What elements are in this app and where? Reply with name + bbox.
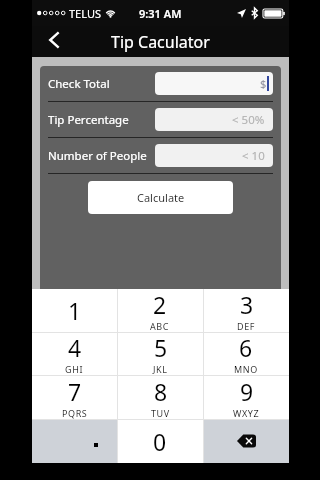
button[interactable]: 2 [117, 289, 203, 332]
button[interactable] [32, 419, 117, 463]
staticText: 2 [153, 289, 167, 320]
staticText: MNO [234, 363, 258, 375]
staticText: WXYZ [233, 407, 260, 419]
button[interactable]: 5 [117, 332, 203, 375]
button[interactable]: Back [32, 26, 76, 57]
button[interactable]: 1 [32, 289, 117, 332]
staticText: $ [260, 76, 267, 91]
staticText: 1 [68, 295, 82, 326]
button[interactable]: Backspace [203, 419, 289, 463]
staticText: < 50% [232, 112, 265, 128]
button[interactable]: < 10 [155, 144, 273, 167]
staticText: DEF [237, 320, 256, 332]
staticText: TUV [151, 407, 170, 419]
staticText: 8 [154, 376, 168, 407]
button[interactable]: 0 [117, 419, 203, 463]
button[interactable]: 9 [203, 375, 289, 419]
staticText: 7 [68, 376, 82, 407]
staticText: 0 [153, 426, 167, 457]
staticText: 9:31 AM [139, 6, 182, 21]
button[interactable]: < 50% [155, 108, 273, 131]
staticText: JKL [153, 363, 168, 375]
staticText: 3 [240, 289, 254, 320]
staticText: Number of People [48, 148, 147, 164]
staticText: Calculate [137, 190, 185, 205]
staticText: 9 [240, 376, 254, 407]
other: Backspace [233, 431, 259, 451]
button[interactable]: 3 [203, 289, 289, 332]
staticText: TELUS [69, 6, 101, 21]
button[interactable]: Calculate [88, 181, 233, 214]
staticText: Tip Caculator [111, 31, 210, 53]
staticText: < 10 [242, 148, 265, 164]
button[interactable]: 4 [32, 332, 117, 375]
staticText: 4 [68, 332, 82, 363]
staticText: ABC [150, 320, 170, 332]
staticText: GHI [65, 363, 84, 375]
staticText: PQRS [62, 407, 88, 419]
staticText: 5 [154, 332, 168, 363]
staticText: 6 [239, 332, 253, 363]
staticText: Check Total [48, 76, 110, 92]
button[interactable]: 6 [203, 332, 289, 375]
button[interactable]: 8 [117, 375, 203, 419]
button[interactable]: $ [155, 72, 273, 95]
staticText: Tip Percentage [48, 112, 129, 128]
button[interactable]: 7 [32, 375, 117, 419]
